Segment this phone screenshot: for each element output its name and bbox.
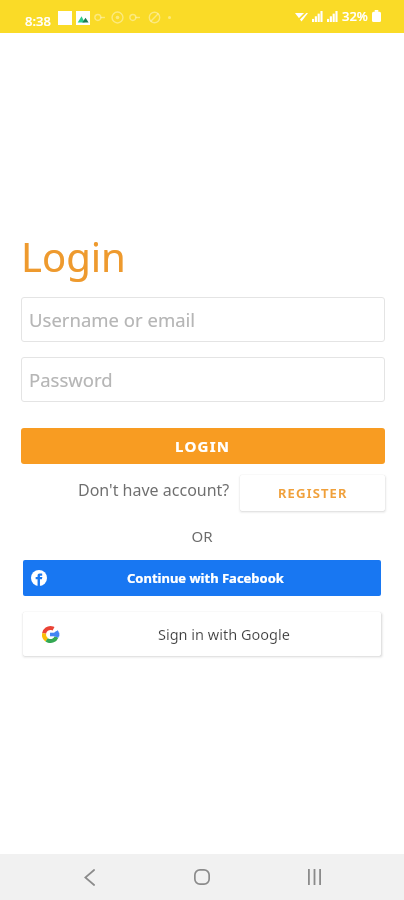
staticText: 8:38 [25, 12, 51, 30]
staticText: LOGIN [175, 436, 231, 456]
staticText: Don't have account? [78, 479, 230, 501]
button[interactable]: Home [178, 854, 226, 900]
staticText: Sign in with Google [158, 624, 290, 644]
button[interactable]: REGISTER [240, 475, 385, 511]
staticText: Login [21, 229, 126, 283]
staticText: 32% [342, 7, 368, 25]
button[interactable]: Back [65, 854, 113, 900]
staticText: Username or email [29, 307, 196, 332]
staticText: Continue with Facebook [127, 569, 284, 587]
button[interactable]: LOGIN [21, 428, 385, 464]
button[interactable]: Username or email [21, 297, 385, 342]
button[interactable]: Sign in with Google [23, 612, 381, 656]
staticText: Password [29, 367, 113, 392]
staticText: OR [0, 526, 404, 546]
staticText: REGISTER [278, 484, 348, 502]
button[interactable]: Recent apps [290, 854, 338, 900]
button[interactable]: Continue with Facebook [23, 560, 381, 596]
button[interactable]: Password [21, 357, 385, 402]
